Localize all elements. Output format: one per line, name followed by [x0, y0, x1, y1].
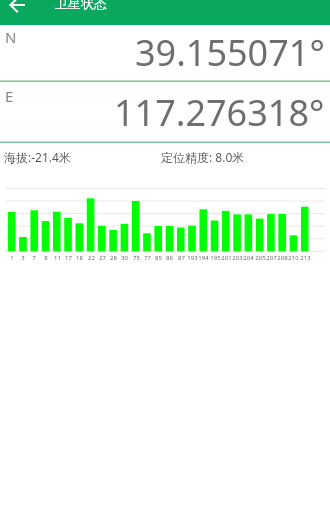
staticText: 28 — [110, 254, 117, 262]
staticText: 3 — [21, 254, 25, 262]
staticText: 87 — [178, 254, 185, 262]
staticText: 39.155071° — [135, 28, 325, 77]
staticText: 77 — [144, 254, 151, 262]
staticText: 30 — [121, 254, 128, 262]
staticText: 86 — [166, 254, 173, 262]
staticText: 27 — [99, 254, 106, 262]
staticText: 205 — [255, 254, 266, 262]
staticText: 117.276318° — [114, 88, 325, 137]
staticText: 22 — [88, 254, 95, 262]
staticText: 17 — [65, 254, 72, 262]
staticText: 85 — [155, 254, 162, 262]
staticText: 1 — [10, 254, 14, 262]
staticText: N — [5, 27, 17, 47]
staticText: 定位精度: 8.0米 — [161, 149, 245, 165]
staticText: 204 — [243, 254, 254, 262]
staticText: 208 — [277, 254, 288, 262]
button[interactable] — [4, 0, 30, 17]
staticText: 194 — [198, 254, 209, 262]
staticText: 193 — [187, 254, 198, 262]
staticText: 201 — [221, 254, 232, 262]
staticText: 卫星状态 — [55, 0, 107, 11]
staticText: E — [5, 86, 14, 106]
staticText: 195 — [210, 254, 221, 262]
staticText: 75 — [133, 254, 140, 262]
staticText: 7 — [32, 254, 36, 262]
staticText: 203 — [232, 254, 243, 262]
staticText: 213 — [300, 254, 311, 262]
staticText: 207 — [266, 254, 277, 262]
staticText: 11 — [54, 254, 61, 262]
staticText: 海拔:-21.4米 — [4, 149, 71, 165]
staticText: 210 — [288, 254, 299, 262]
staticText: 8 — [44, 254, 48, 262]
staticText: 18 — [76, 254, 83, 262]
